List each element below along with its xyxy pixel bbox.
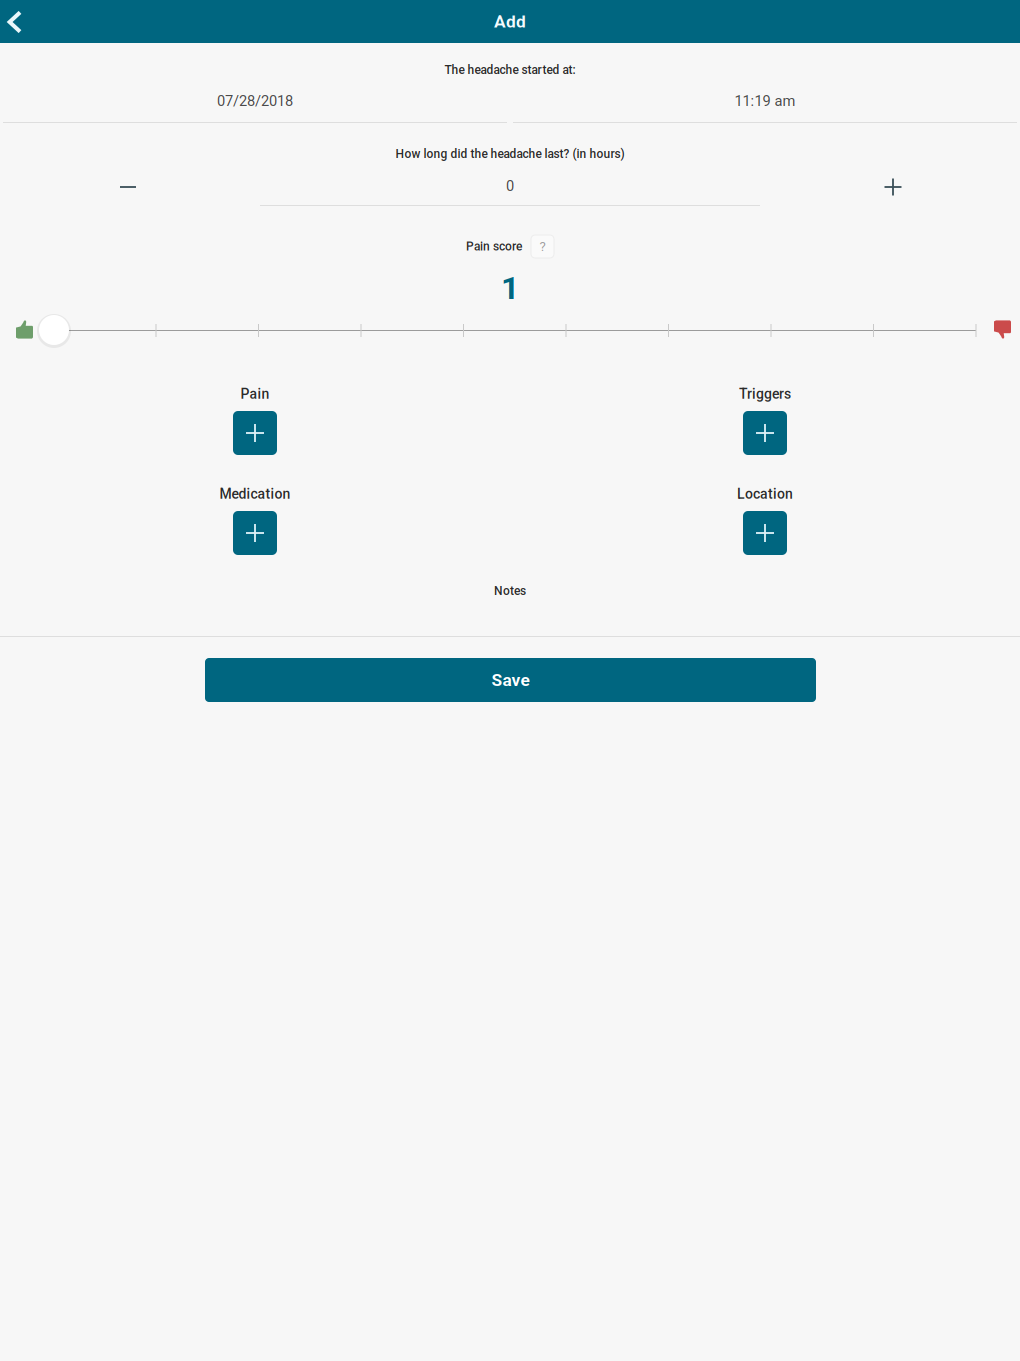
- staticText: Add: [494, 11, 526, 32]
- button[interactable]: Increase hours: [861, 165, 925, 209]
- button[interactable]: About the pain score: [531, 235, 554, 258]
- staticText: 1: [501, 269, 519, 307]
- staticText: Location: [737, 486, 793, 502]
- button[interactable]: 11:19 am: [513, 84, 1017, 123]
- button[interactable]: Back: [0, 0, 44, 43]
- staticText: The headache started at:: [444, 63, 575, 77]
- staticText: 11:19 am: [734, 92, 795, 110]
- button[interactable]: Decrease hours: [96, 165, 160, 209]
- button[interactable]: 07/28/2018: [3, 84, 507, 123]
- staticText: Medication: [219, 486, 290, 502]
- button[interactable]: Add Location: [743, 511, 787, 555]
- button[interactable]: Save: [205, 658, 816, 702]
- button[interactable]: Pain score slider, value 1: [39, 315, 69, 345]
- staticText: 0: [506, 177, 514, 195]
- button[interactable]: Add Pain: [233, 411, 277, 455]
- staticText: How long did the headache last? (in hour…: [395, 147, 624, 161]
- staticText: Triggers: [739, 386, 791, 402]
- staticText: 07/28/2018: [217, 92, 293, 110]
- staticText: Notes: [494, 584, 526, 598]
- staticText: ?: [539, 239, 545, 254]
- staticText: Pain score: [466, 239, 522, 254]
- staticText: Pain: [240, 386, 269, 402]
- staticText: Save: [491, 670, 529, 690]
- button[interactable]: Add Triggers: [743, 411, 787, 455]
- button[interactable]: Add Medication: [233, 511, 277, 555]
